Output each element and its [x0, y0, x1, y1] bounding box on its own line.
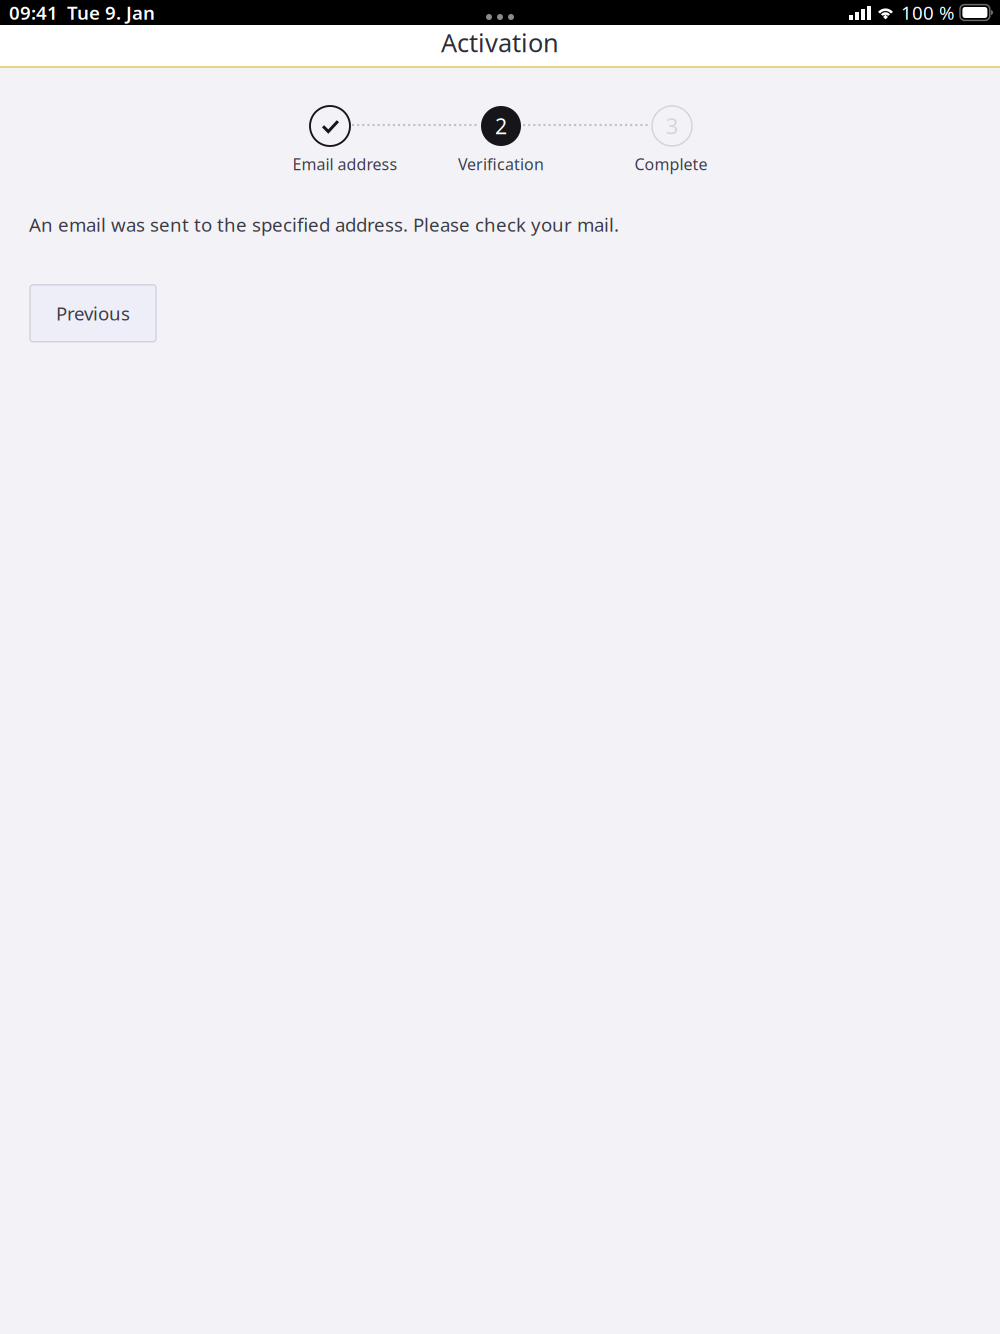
staticText: 100 %	[901, 0, 955, 25]
staticText: 09:41	[9, 0, 58, 25]
staticText: Tue 9. Jan	[67, 0, 155, 25]
button[interactable]: Previous	[30, 285, 156, 342]
staticText: Activation	[441, 26, 559, 59]
staticText: Email address	[292, 153, 397, 175]
staticText: 2	[495, 112, 507, 140]
staticText: An email was sent to the specified addre…	[29, 212, 619, 237]
staticText: 3	[666, 112, 678, 140]
staticText: Verification	[458, 153, 544, 175]
staticText: Previous	[56, 301, 130, 326]
staticText: Complete	[634, 153, 707, 175]
